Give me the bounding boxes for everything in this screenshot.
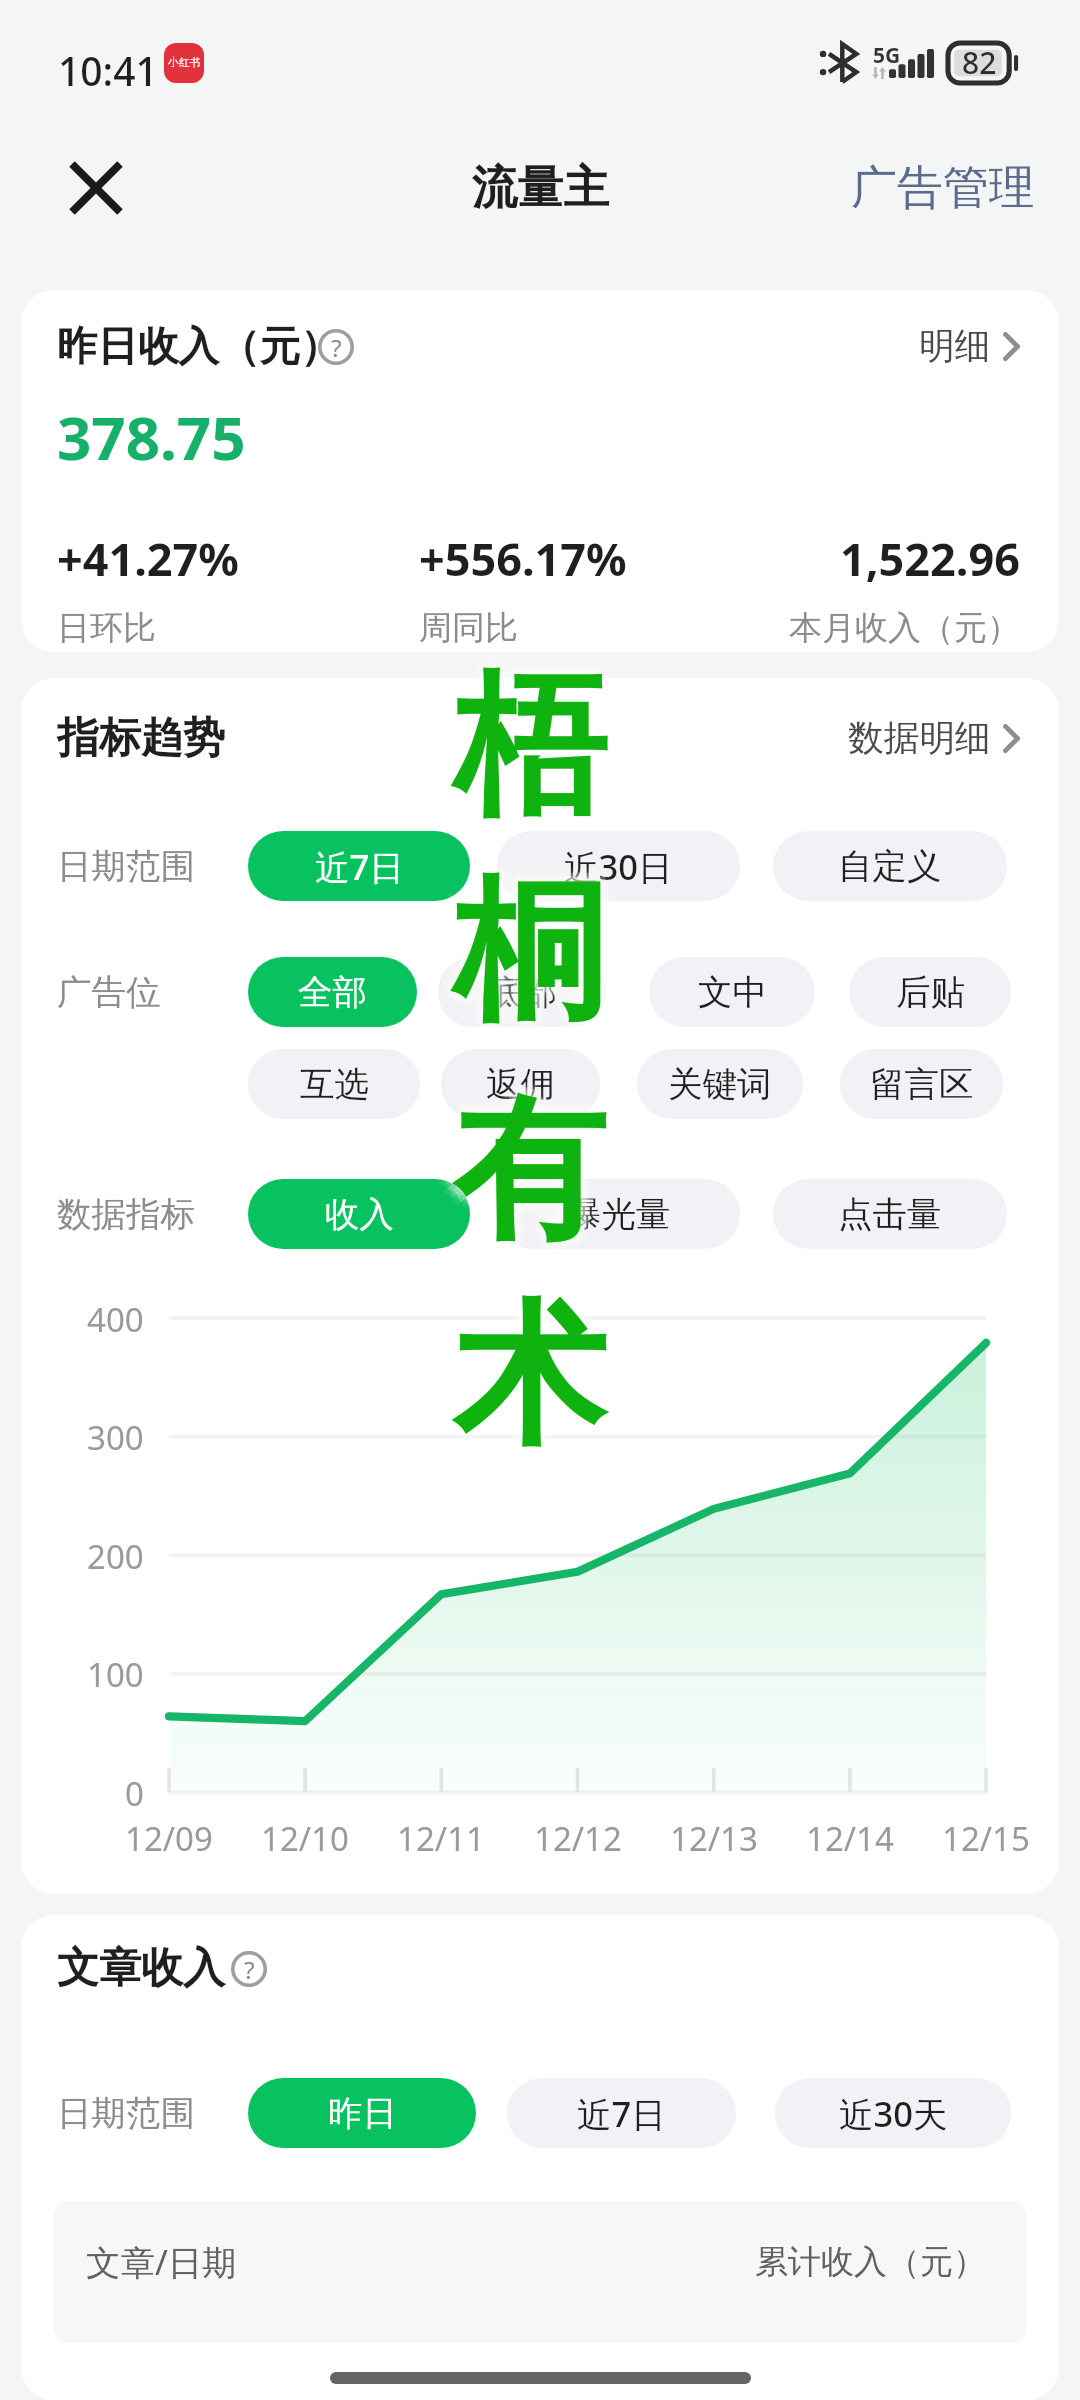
staticText: 有 [453, 1088, 606, 1281]
staticText: 有 [462, 1067, 615, 1260]
staticText: 有 [462, 1084, 615, 1277]
button[interactable]: 文中 [649, 957, 815, 1027]
staticText: 梧 [446, 651, 599, 844]
staticText: 梧 [460, 651, 613, 844]
staticText: 桐 [448, 861, 601, 1054]
button[interactable]: 数据明细 [848, 707, 1020, 770]
staticText: +556.17% [419, 528, 627, 589]
button[interactable]: 明细 [919, 315, 1020, 378]
button[interactable]: 留言区 [840, 1049, 1003, 1119]
staticText: 返佣 [486, 1063, 555, 1106]
staticText: 流量主 [472, 159, 609, 216]
staticText: 12/15 [942, 1816, 1030, 1861]
button[interactable]: 广告管理 [806, 129, 1080, 247]
staticText: 0 [125, 1771, 144, 1816]
staticText: 广告管理 [851, 159, 1035, 217]
staticText: 有 [440, 1076, 593, 1269]
staticText: 100 [87, 1652, 144, 1697]
staticText: 12/13 [670, 1816, 758, 1861]
button[interactable]: 底部 [438, 957, 606, 1027]
staticText: 378.75 [57, 396, 246, 478]
staticText: 累计收入（元） [755, 2241, 986, 2283]
staticText: 桐 [453, 868, 606, 1061]
staticText: 数据明细 [848, 716, 991, 761]
button[interactable]: 近7日 [248, 831, 470, 901]
staticText: 术 [460, 1281, 613, 1474]
staticText: 12/11 [397, 1816, 485, 1861]
staticText: +41.27% [57, 528, 239, 589]
staticText: 有 [453, 1076, 606, 1269]
staticText: 5G [873, 41, 901, 70]
staticText: 全部 [298, 971, 367, 1014]
staticText: 82 [962, 42, 997, 83]
staticText: 术 [440, 1281, 593, 1474]
button[interactable]: 互选 [248, 1049, 420, 1119]
staticText: 自定义 [838, 845, 942, 888]
staticText: 术 [458, 1276, 611, 1469]
staticText: 桐 [458, 851, 611, 1044]
staticText: 文章/日期 [86, 2238, 237, 2285]
button[interactable]: 后贴 [849, 957, 1011, 1027]
staticText: 12/14 [806, 1816, 894, 1861]
staticText: 有 [444, 1067, 597, 1260]
staticText: 数据指标 [57, 1193, 195, 1236]
button[interactable]: Close [24, 116, 168, 260]
staticText: 梧 [453, 663, 606, 856]
staticText: 梧 [453, 651, 606, 844]
staticText: 有 [444, 1084, 597, 1277]
staticText: 近30日 [564, 843, 673, 890]
staticText: 日环比 [57, 607, 156, 649]
staticText: 曝光量 [567, 1193, 671, 1236]
staticText: 有 [458, 1070, 611, 1263]
staticText: 术 [453, 1293, 606, 1486]
button[interactable]: 近7日 [507, 2078, 736, 2148]
staticText: 有 [453, 1068, 606, 1261]
staticText: 梧 [448, 646, 601, 839]
staticText: 明细 [919, 324, 991, 369]
staticText: 关键词 [668, 1063, 772, 1106]
staticText: 术 [466, 1281, 619, 1474]
button[interactable]: 点击量 [773, 1179, 1007, 1249]
button[interactable]: 返佣 [441, 1049, 600, 1119]
staticText: 12/09 [125, 1816, 213, 1861]
staticText: 梧 [462, 642, 615, 835]
staticText: 广告位 [57, 971, 161, 1014]
button[interactable]: 近30日 [497, 831, 740, 901]
button[interactable]: 关键词 [637, 1049, 803, 1119]
staticText: 桐 [444, 865, 597, 1058]
staticText: 术 [462, 1290, 615, 1483]
staticText: 近30天 [839, 2090, 948, 2137]
staticText: ? [331, 331, 342, 364]
staticText: 术 [448, 1276, 601, 1469]
button[interactable]: 自定义 [773, 831, 1007, 901]
staticText: 梧 [462, 660, 615, 853]
staticText: 10:41 [58, 44, 158, 97]
staticText: 1,522.96 [840, 528, 1020, 589]
staticText: 昨日 [328, 2092, 397, 2135]
button[interactable]: 昨日 [248, 2078, 476, 2148]
staticText: 梧 [448, 656, 601, 849]
staticText: 后贴 [896, 971, 965, 1014]
button[interactable]: 全部 [248, 957, 417, 1027]
staticText: 桐 [440, 856, 593, 1049]
staticText: 200 [87, 1534, 144, 1579]
staticText: 术 [458, 1286, 611, 1479]
staticText: 术 [453, 1274, 606, 1467]
staticText: 梧 [444, 660, 597, 853]
staticText: 有 [466, 1076, 619, 1269]
staticText: 梧 [453, 638, 606, 831]
button[interactable]: 曝光量 [497, 1179, 740, 1249]
staticText: 梧 [453, 644, 606, 837]
staticText: 桐 [462, 865, 615, 1058]
button[interactable]: 近30天 [775, 2078, 1011, 2148]
staticText: 桐 [446, 856, 599, 1049]
staticText: 日期范围 [57, 2092, 195, 2135]
staticText: 有 [460, 1076, 613, 1269]
staticText: 梧 [440, 651, 593, 844]
staticText: 桐 [453, 863, 606, 1056]
staticText: 术 [444, 1290, 597, 1483]
button[interactable]: 收入 [248, 1179, 470, 1249]
staticText: 有 [446, 1076, 599, 1269]
staticText: 梧 [458, 656, 611, 849]
staticText: 术 [462, 1272, 615, 1465]
